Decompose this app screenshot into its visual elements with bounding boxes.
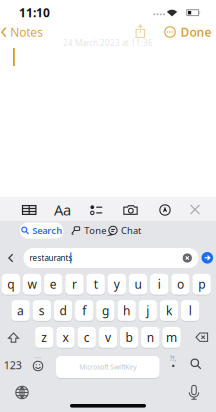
staticText: ?!,: [170, 354, 177, 363]
button[interactable]: Search: [190, 358, 202, 370]
button[interactable]: Tone: [71, 224, 106, 237]
button[interactable]: Emoji: [33, 361, 43, 371]
staticText: 24 March 2023 at 11:36: [63, 38, 153, 48]
staticText: x: [62, 329, 68, 345]
staticText: y: [114, 276, 120, 292]
button[interactable]: h: [117, 300, 136, 321]
button[interactable]: z: [35, 327, 53, 348]
button[interactable]: Search: [201, 252, 213, 264]
staticText: q: [7, 276, 14, 292]
button[interactable]: Notes: [1, 24, 43, 40]
button[interactable]: y: [108, 274, 126, 295]
button[interactable]: Dictate: [187, 385, 201, 400]
button[interactable]: 123: [2, 354, 24, 376]
staticText: s: [39, 302, 45, 318]
staticText: n: [147, 329, 154, 345]
button[interactable]: c: [77, 327, 96, 348]
button[interactable]: e: [44, 274, 62, 295]
button[interactable]: v: [99, 327, 117, 348]
button[interactable]: Delete: [195, 332, 208, 342]
button[interactable]: t: [86, 274, 105, 295]
button[interactable]: Done: [180, 24, 211, 40]
button[interactable]: i: [150, 274, 168, 295]
button[interactable]: Share: [131, 23, 149, 41]
staticText: j: [146, 302, 149, 318]
button[interactable]: Space: [56, 356, 159, 378]
staticText: t: [94, 276, 98, 292]
staticText: restaurants: [29, 252, 72, 263]
button[interactable]: Markup: [159, 204, 171, 216]
button[interactable]: Insert table: [21, 205, 37, 215]
button[interactable]: x: [56, 327, 75, 348]
staticText: Aa: [54, 200, 71, 220]
button[interactable]: u: [129, 274, 147, 295]
staticText: d: [59, 302, 66, 318]
button[interactable]: d: [54, 300, 72, 321]
staticText: h: [123, 302, 130, 318]
button[interactable]: b: [120, 327, 138, 348]
button[interactable]: Shift: [8, 332, 19, 343]
button[interactable]: n: [141, 327, 159, 348]
button[interactable]: f: [75, 300, 93, 321]
staticText: g: [102, 302, 109, 318]
staticText: p: [198, 276, 205, 292]
button[interactable]: j: [139, 300, 157, 321]
staticText: Done: [180, 24, 211, 40]
staticText: 123: [4, 358, 22, 372]
button[interactable]: r: [65, 274, 84, 295]
staticText: m: [166, 329, 177, 345]
staticText: v: [105, 329, 111, 345]
staticText: Microsoft SwiftKey: [79, 363, 136, 371]
button[interactable]: Camera: [123, 205, 138, 215]
button[interactable]: Search: [20, 222, 63, 238]
staticText: u: [134, 276, 141, 292]
staticText: b: [126, 329, 133, 345]
button[interactable]: Next keyboard: [15, 386, 29, 399]
button[interactable]: w: [23, 274, 41, 295]
button[interactable]: a: [11, 300, 30, 321]
staticText: c: [84, 329, 90, 345]
staticText: Chat: [121, 224, 141, 237]
staticText: a: [17, 302, 24, 318]
button[interactable]: Checklist: [90, 205, 103, 215]
staticText: Tone: [84, 224, 106, 237]
button[interactable]: o: [171, 274, 190, 295]
button[interactable]: Period: [166, 355, 180, 369]
button[interactable]: q: [2, 274, 20, 295]
staticText: Search: [32, 224, 62, 237]
button[interactable]: g: [96, 300, 114, 321]
button[interactable]: s: [33, 300, 51, 321]
button[interactable]: Format: [52, 203, 72, 217]
button[interactable]: p: [192, 274, 211, 295]
staticText: z: [41, 329, 47, 345]
staticText: l: [189, 302, 192, 318]
button[interactable]: Chat: [108, 224, 141, 237]
staticText: r: [72, 276, 77, 292]
button[interactable]: Clear text: [183, 253, 192, 263]
staticText: w: [27, 276, 36, 292]
button[interactable]: k: [160, 300, 178, 321]
staticText: f: [82, 302, 86, 318]
button[interactable]: More: [164, 26, 176, 38]
staticText: i: [158, 276, 161, 292]
button[interactable]: Back: [6, 253, 15, 263]
staticText: o: [177, 276, 184, 292]
button[interactable]: m: [162, 327, 181, 348]
button[interactable]: Dismiss toolbar: [190, 204, 200, 215]
button[interactable]: l: [181, 300, 199, 321]
staticText: e: [50, 276, 57, 292]
staticText: k: [166, 302, 172, 318]
staticText: 11:10: [19, 4, 50, 20]
staticText: Notes: [10, 24, 43, 40]
